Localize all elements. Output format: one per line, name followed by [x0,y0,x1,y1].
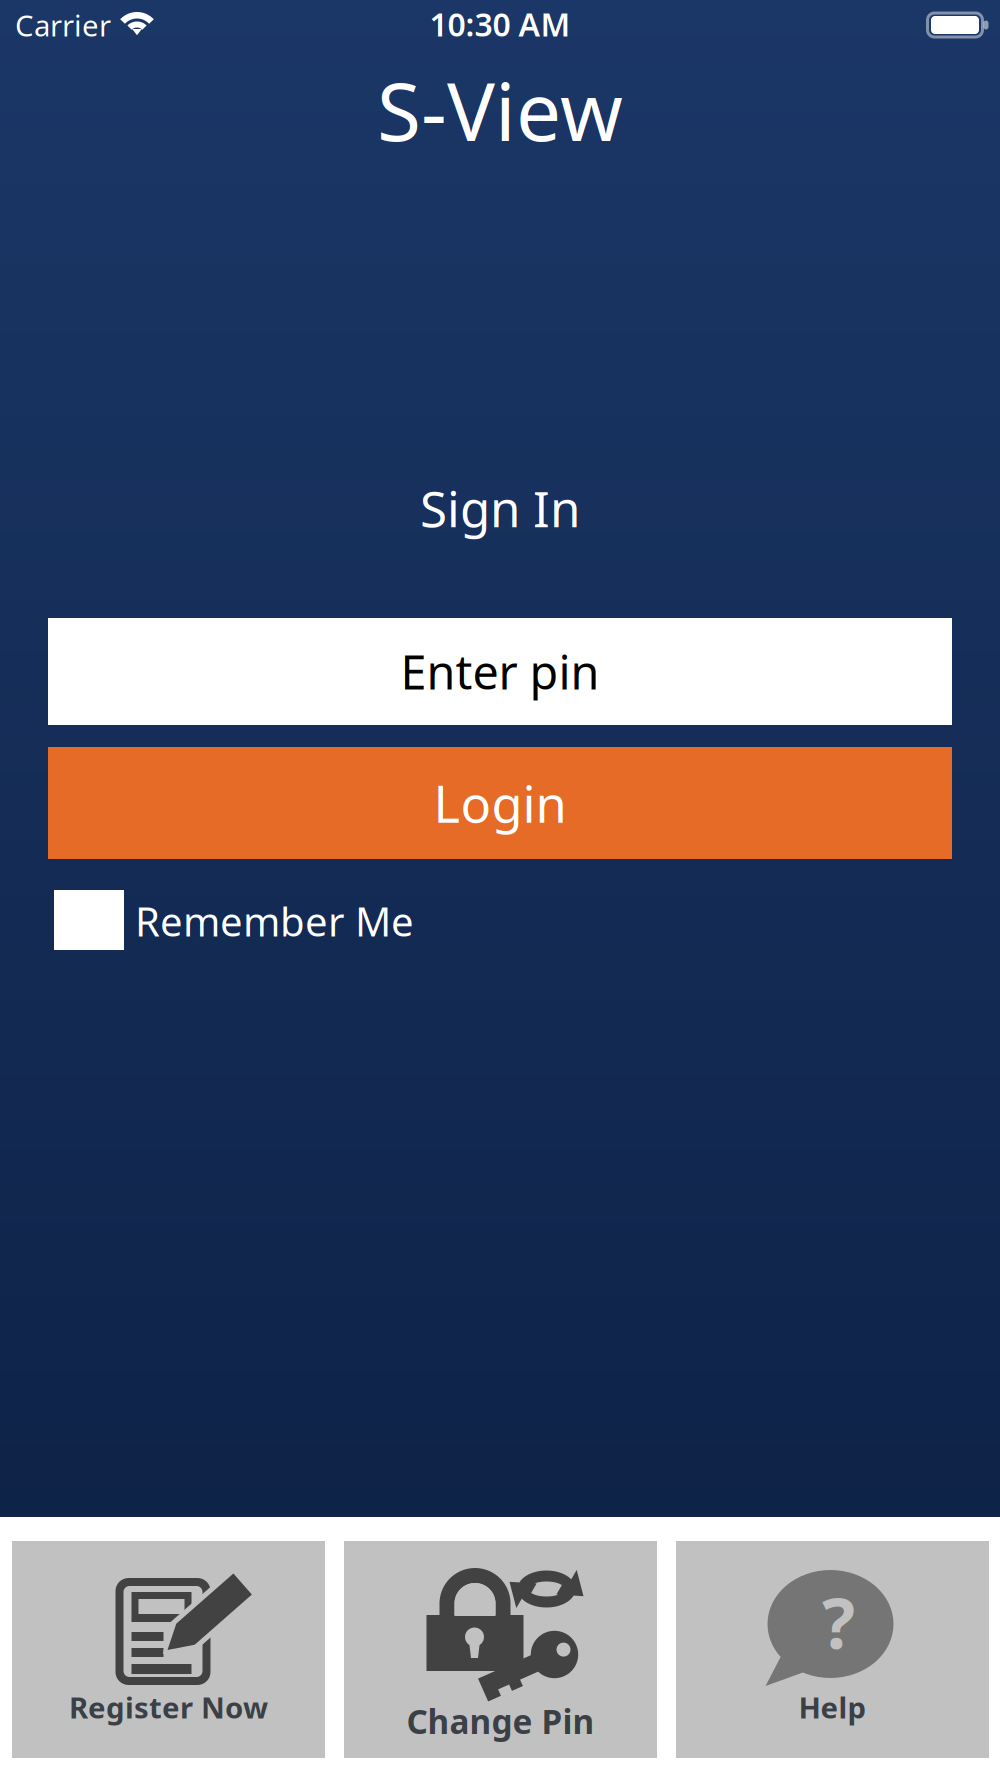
button[interactable]: Remember Me [54,890,958,954]
staticText: S-View [377,57,623,163]
button[interactable]: Register Now [12,1541,325,1758]
button[interactable]: Login [48,747,952,859]
staticText: ? [822,1576,855,1668]
staticText: Carrier [15,5,111,44]
staticText: Remember Me [135,894,414,947]
staticText: Sign In [420,475,580,541]
button[interactable]: Change Pin [344,1541,657,1758]
button[interactable]: ? [676,1541,989,1758]
staticText: Help [798,1687,866,1726]
staticText: Register Now [69,1687,268,1726]
button[interactable]: Enter pin [48,618,952,725]
staticText: 10:30 AM [429,3,570,45]
staticText: Change Pin [406,1699,594,1743]
staticText: Login [433,769,566,837]
staticText: Enter pin [400,640,599,702]
